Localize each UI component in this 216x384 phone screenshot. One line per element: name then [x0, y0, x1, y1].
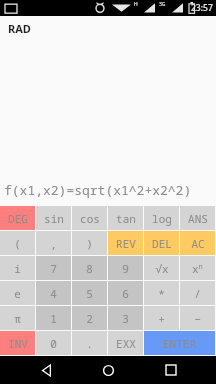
staticText: 1 [50, 311, 57, 326]
staticText: log [152, 211, 172, 226]
button[interactable]: 6 [108, 281, 143, 305]
button[interactable]: ANS [180, 206, 215, 230]
button[interactable]: * [144, 281, 179, 305]
staticText: . [86, 336, 93, 351]
staticText: REV [116, 236, 136, 251]
button[interactable]: Back [29, 356, 63, 384]
button[interactable]: ) [72, 231, 107, 255]
button[interactable]: xn [180, 256, 215, 280]
staticText: , [50, 236, 57, 251]
staticText: 4 [50, 286, 57, 301]
staticText: / [194, 286, 201, 301]
staticText: cos [80, 211, 100, 226]
button[interactable]: AC [180, 231, 215, 255]
staticText: DEG [8, 211, 28, 226]
staticText: ) [86, 236, 93, 251]
button[interactable]: 1 [36, 306, 71, 330]
button[interactable]: i [0, 256, 35, 280]
button[interactable]: 4 [36, 281, 71, 305]
staticText: DEL [152, 236, 172, 251]
staticText: 23:57 [191, 2, 213, 14]
staticText: 0 [50, 336, 57, 351]
staticText: f(x1,x2)=sqrt(x1^2+x2^2) [4, 181, 192, 199]
staticText: + [158, 311, 165, 326]
button[interactable]: tan [108, 206, 143, 230]
button[interactable]: 0 [36, 331, 71, 355]
button[interactable]: e [0, 281, 35, 305]
button[interactable]: ENTER [144, 331, 215, 355]
button[interactable]: sin [36, 206, 71, 230]
staticText: π [14, 311, 21, 326]
button[interactable]: , [36, 231, 71, 255]
staticText: 8 [86, 261, 93, 276]
button[interactable]: Recents [154, 356, 188, 384]
staticText: 2 [86, 311, 93, 326]
button[interactable]: DEL [144, 231, 179, 255]
staticText: i [14, 261, 21, 276]
button[interactable]: 5 [72, 281, 107, 305]
staticText: INV [8, 336, 28, 351]
staticText: − [194, 311, 201, 326]
button[interactable]: / [180, 281, 215, 305]
button[interactable]: − [180, 306, 215, 330]
button[interactable]: Home [91, 356, 125, 384]
button[interactable]: 9 [108, 256, 143, 280]
staticText: RAD [8, 21, 31, 36]
button[interactable]: log [144, 206, 179, 230]
button[interactable]: cos [72, 206, 107, 230]
staticText: H [134, 1, 138, 8]
staticText: 3G [159, 1, 166, 8]
staticText: 6 [122, 286, 129, 301]
button[interactable]: EXX [108, 331, 143, 355]
staticText: 9 [122, 261, 129, 276]
staticText: 7 [50, 261, 57, 276]
staticText: √x [155, 261, 169, 276]
staticText: tan [116, 211, 136, 226]
button[interactable]: √x [144, 256, 179, 280]
staticText: EXX [116, 336, 136, 351]
staticText: AC [191, 236, 205, 251]
staticText: ANS [188, 211, 208, 226]
button[interactable]: 3 [108, 306, 143, 330]
button[interactable]: π [0, 306, 35, 330]
button[interactable]: INV [0, 331, 35, 355]
staticText: * [158, 286, 165, 301]
button[interactable]: ( [0, 231, 35, 255]
button[interactable]: 8 [72, 256, 107, 280]
staticText: 5 [86, 286, 93, 301]
staticText: sin [44, 211, 64, 226]
staticText: e [14, 286, 21, 301]
button[interactable]: 7 [36, 256, 71, 280]
button[interactable]: REV [108, 231, 143, 255]
button[interactable]: DEG [0, 206, 35, 230]
button[interactable]: + [144, 306, 179, 330]
button[interactable]: 2 [72, 306, 107, 330]
staticText: ( [14, 236, 21, 251]
staticText: 3 [122, 311, 129, 326]
staticText: xn [192, 261, 203, 276]
staticText: ENTER [163, 336, 196, 351]
